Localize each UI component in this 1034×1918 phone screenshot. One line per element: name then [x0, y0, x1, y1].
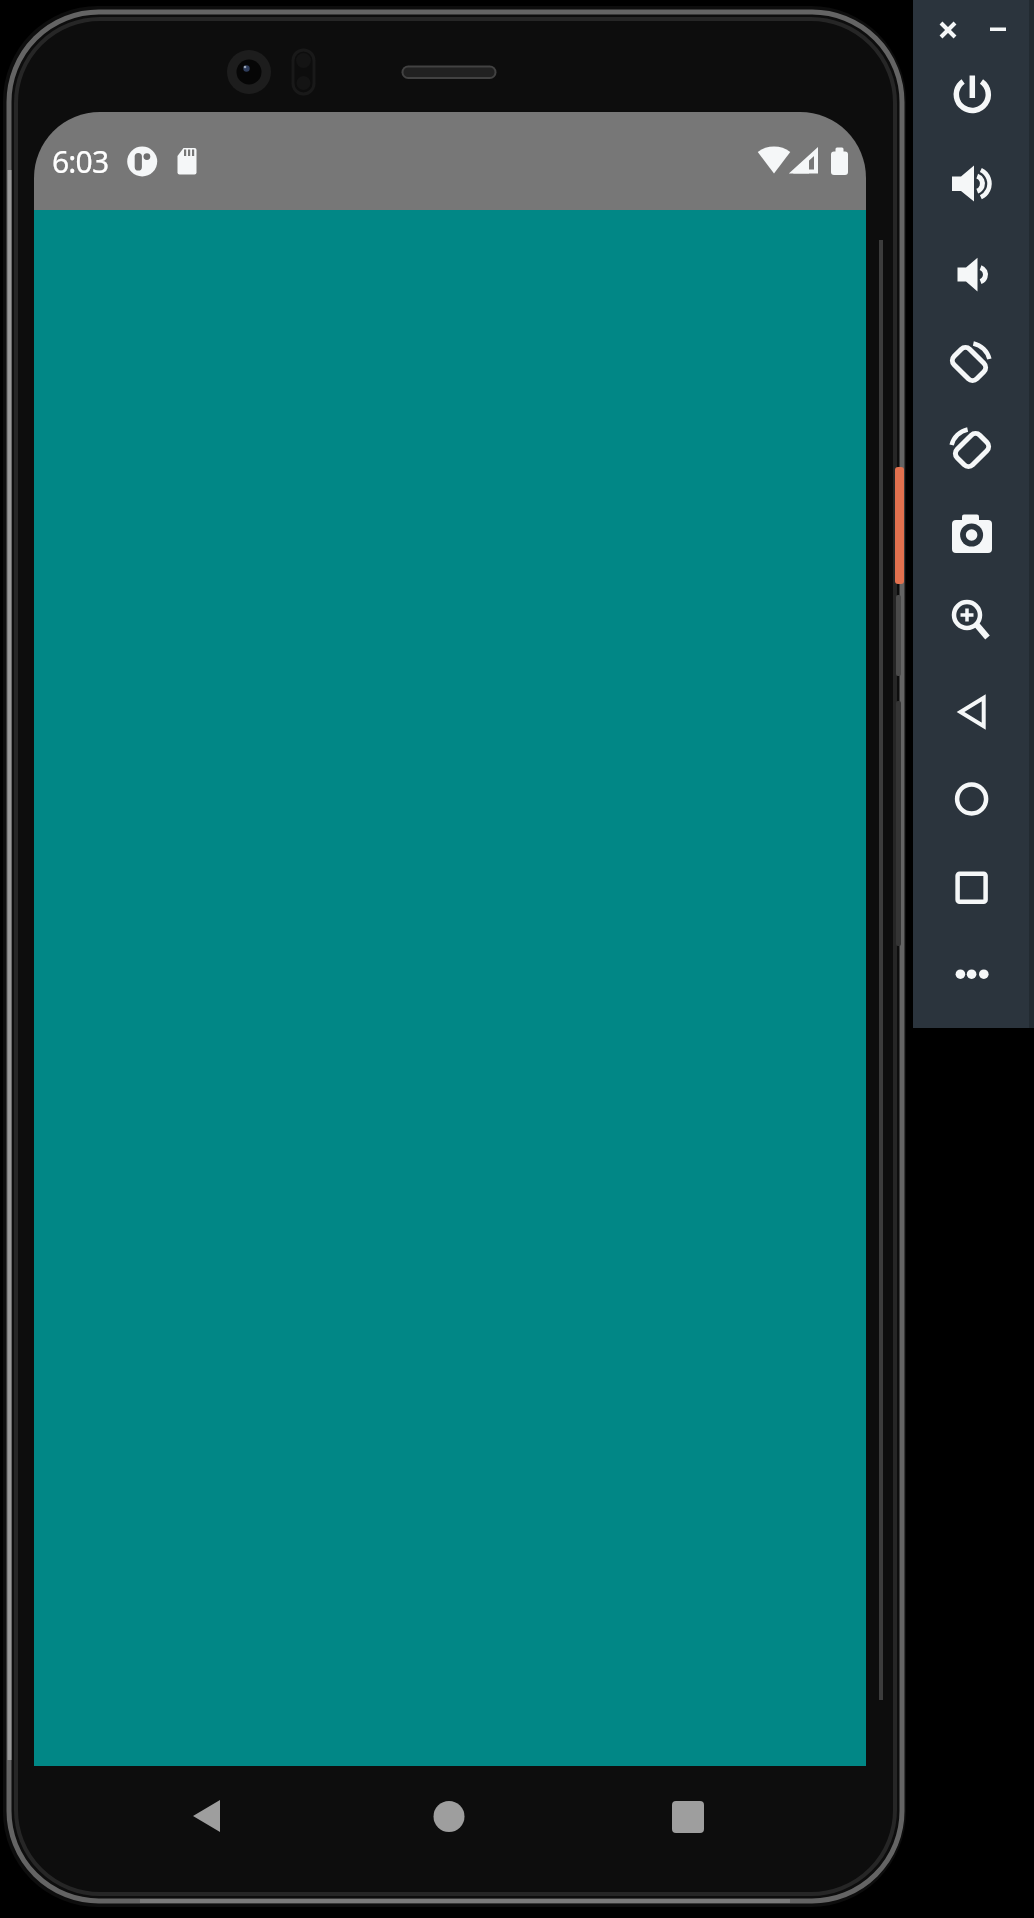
button[interactable] — [176, 1786, 236, 1846]
button[interactable] — [948, 338, 996, 386]
button[interactable] — [948, 775, 996, 823]
button[interactable] — [948, 426, 996, 474]
button[interactable] — [419, 1786, 479, 1846]
button[interactable] — [948, 598, 996, 646]
button[interactable] — [948, 863, 996, 911]
button[interactable] — [948, 250, 996, 298]
button[interactable] — [983, 16, 1011, 44]
button[interactable] — [948, 160, 996, 208]
staticText: 6:03 — [52, 141, 109, 182]
button[interactable] — [948, 688, 996, 736]
button[interactable] — [934, 16, 962, 44]
button[interactable] — [948, 70, 996, 118]
button[interactable] — [658, 1786, 718, 1846]
button[interactable] — [948, 950, 996, 998]
button[interactable] — [948, 510, 996, 558]
